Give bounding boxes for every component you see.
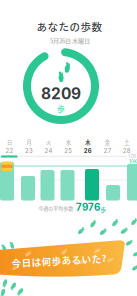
staticText: 火 (46, 138, 51, 146)
staticText: 22 (5, 147, 13, 154)
button[interactable]: 木 (78, 138, 97, 154)
staticText: 27 (104, 147, 111, 154)
staticText: 24 (45, 147, 53, 154)
button[interactable]: 水 (59, 138, 78, 154)
button[interactable]: 金 (98, 138, 117, 154)
staticText: 28 (123, 147, 131, 154)
staticText: 金 (105, 138, 110, 146)
button[interactable]: Scroll position (1, 155, 17, 158)
staticText: 5月26日 木曜日 (50, 36, 90, 45)
button[interactable]: 土 (117, 138, 136, 154)
staticText: 木 (85, 138, 90, 146)
staticText: あなたの歩数 (36, 19, 102, 34)
staticText: 7976 (76, 201, 100, 213)
staticText: 10K (129, 159, 137, 164)
staticText: 月 (27, 138, 32, 146)
button[interactable]: 日 (0, 138, 19, 154)
staticText: 25 (64, 147, 72, 154)
staticText: 26 (84, 147, 92, 154)
staticText: 今週の平均歩数 (38, 204, 73, 212)
staticText: 日 (7, 138, 12, 146)
staticText: 歩 (57, 103, 65, 114)
staticText: 今日は何歩あるいた? (11, 253, 106, 267)
staticText: 12K (128, 153, 136, 159)
button[interactable]: 今日は何歩あるいた? (0, 230, 137, 286)
staticText: 8209 (41, 84, 81, 103)
button[interactable]: 月 (20, 138, 39, 154)
staticText: 水 (66, 138, 71, 146)
staticText: 土 (124, 138, 129, 146)
staticText: 23 (25, 147, 33, 154)
button[interactable]: 火 (39, 138, 58, 154)
staticText: 歩 (100, 205, 106, 213)
